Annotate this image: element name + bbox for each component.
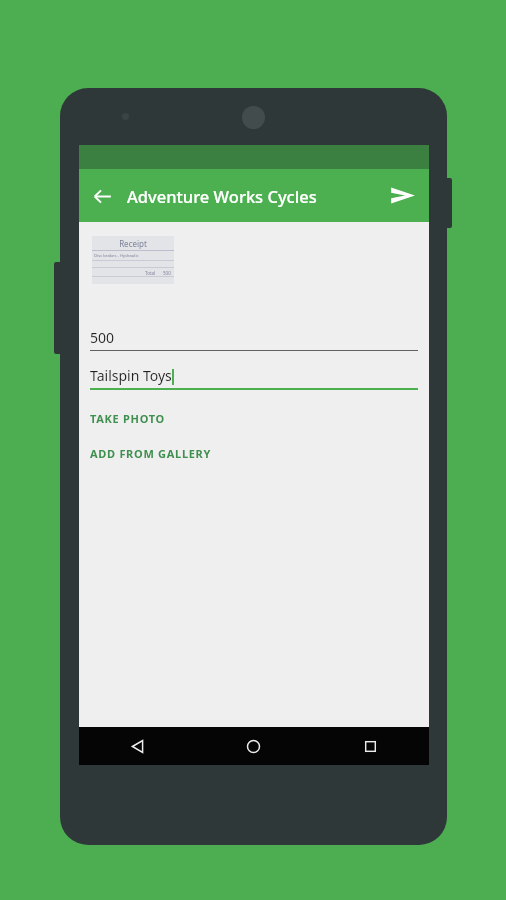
staticText: TAKE PHOTO	[90, 411, 165, 426]
button[interactable]: TAKE PHOTO	[90, 407, 418, 430]
button[interactable]: Receipt	[92, 236, 174, 284]
staticText: ADD FROM GALLERY	[90, 446, 212, 461]
staticText: Receipt	[92, 238, 174, 249]
button[interactable]: Navigate back	[79, 173, 125, 219]
button[interactable]: Send	[375, 169, 429, 222]
button[interactable]: Tailspin Toys	[90, 366, 418, 390]
staticText: 500	[90, 328, 115, 347]
button[interactable]: 500	[90, 328, 418, 351]
button[interactable]: Home	[195, 727, 312, 765]
button[interactable]: Back	[79, 727, 195, 765]
staticText: Total	[145, 270, 156, 276]
staticText: 500	[163, 270, 171, 276]
staticText: Adventure Works Cycles	[127, 185, 375, 207]
button[interactable]: ADD FROM GALLERY	[90, 442, 418, 465]
button[interactable]: Recent apps	[312, 727, 429, 765]
staticText: Tailspin Toys	[90, 366, 172, 385]
staticText: Disc brakes - Hydraulic	[94, 253, 139, 259]
